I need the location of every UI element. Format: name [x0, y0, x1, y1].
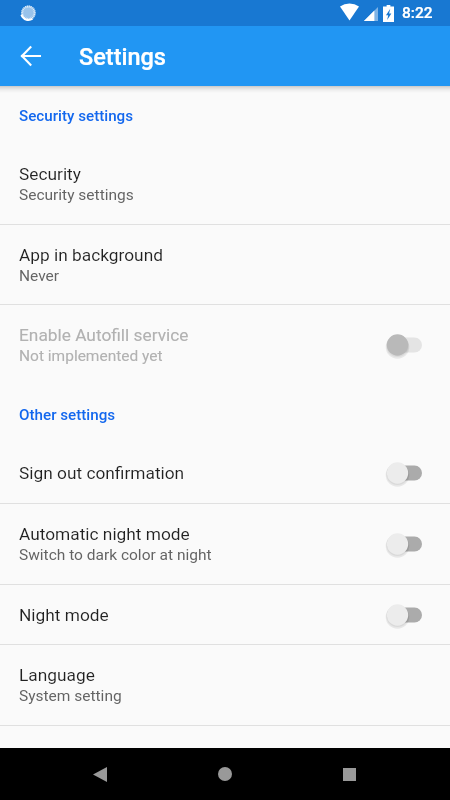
button[interactable]: Night mode — [0, 585, 450, 644]
staticText: Security — [19, 164, 81, 184]
staticText: App in background — [19, 245, 163, 265]
button[interactable]: Automatic night mode — [0, 504, 450, 584]
button[interactable]: App in background — [0, 225, 450, 304]
staticText: Other settings — [19, 406, 116, 424]
button[interactable]: Sign out confirmation — [0, 443, 450, 503]
staticText: Language — [19, 665, 95, 685]
staticText: Security settings — [19, 107, 134, 125]
button[interactable]: Language — [0, 645, 450, 725]
button[interactable]: Enable Autofill service — [0, 305, 450, 385]
staticText: Enable Autofill service — [19, 325, 189, 345]
staticText: Security settings — [19, 186, 134, 204]
staticText: Never — [19, 267, 60, 285]
button[interactable]: Home — [199, 748, 251, 800]
button[interactable]: Security — [0, 144, 450, 224]
staticText: Switch to dark color at night — [19, 546, 212, 564]
staticText: Sign out confirmation — [19, 463, 185, 483]
button[interactable]: Back — [7, 33, 53, 79]
staticText: Not implemented yet — [19, 347, 163, 365]
staticText: Night mode — [19, 605, 109, 625]
staticText: Automatic night mode — [19, 524, 190, 544]
button[interactable]: Recents — [323, 748, 375, 800]
button[interactable]: Back — [74, 748, 126, 800]
staticText: Settings — [79, 43, 167, 71]
staticText: System setting — [19, 687, 122, 705]
staticText: 8:22 — [402, 4, 433, 22]
